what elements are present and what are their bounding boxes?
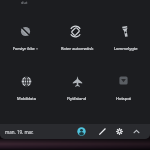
button[interactable]: Lommelygte	[96, 44, 150, 52]
button[interactable]: Flytilstand	[47, 94, 107, 102]
button[interactable]	[17, 23, 34, 40]
button[interactable]: Roter automatisk	[47, 44, 107, 52]
staticText: Forstyr ikke	[13, 46, 35, 51]
button[interactable]	[77, 127, 86, 136]
button[interactable]: Forstyr ikke	[0, 44, 56, 52]
staticText: Roter automatisk	[61, 46, 94, 51]
button[interactable]	[98, 127, 107, 136]
staticText: Lommelygte	[114, 46, 138, 51]
staticText: man. 19. mar.	[5, 129, 34, 135]
button[interactable]	[117, 23, 134, 40]
staticText: Flytilstand	[67, 96, 87, 101]
button[interactable]: Mobildata	[0, 94, 56, 102]
staticText: dut	[21, 0, 28, 5]
button[interactable]	[132, 127, 141, 136]
button[interactable]	[69, 73, 86, 90]
staticText: Hotspot	[116, 96, 132, 101]
button[interactable]	[67, 23, 84, 40]
button[interactable]	[115, 72, 132, 89]
staticText: Mobildata	[17, 96, 36, 101]
button[interactable]: Hotspot	[94, 94, 150, 102]
button[interactable]	[18, 73, 35, 90]
button[interactable]	[115, 127, 124, 136]
